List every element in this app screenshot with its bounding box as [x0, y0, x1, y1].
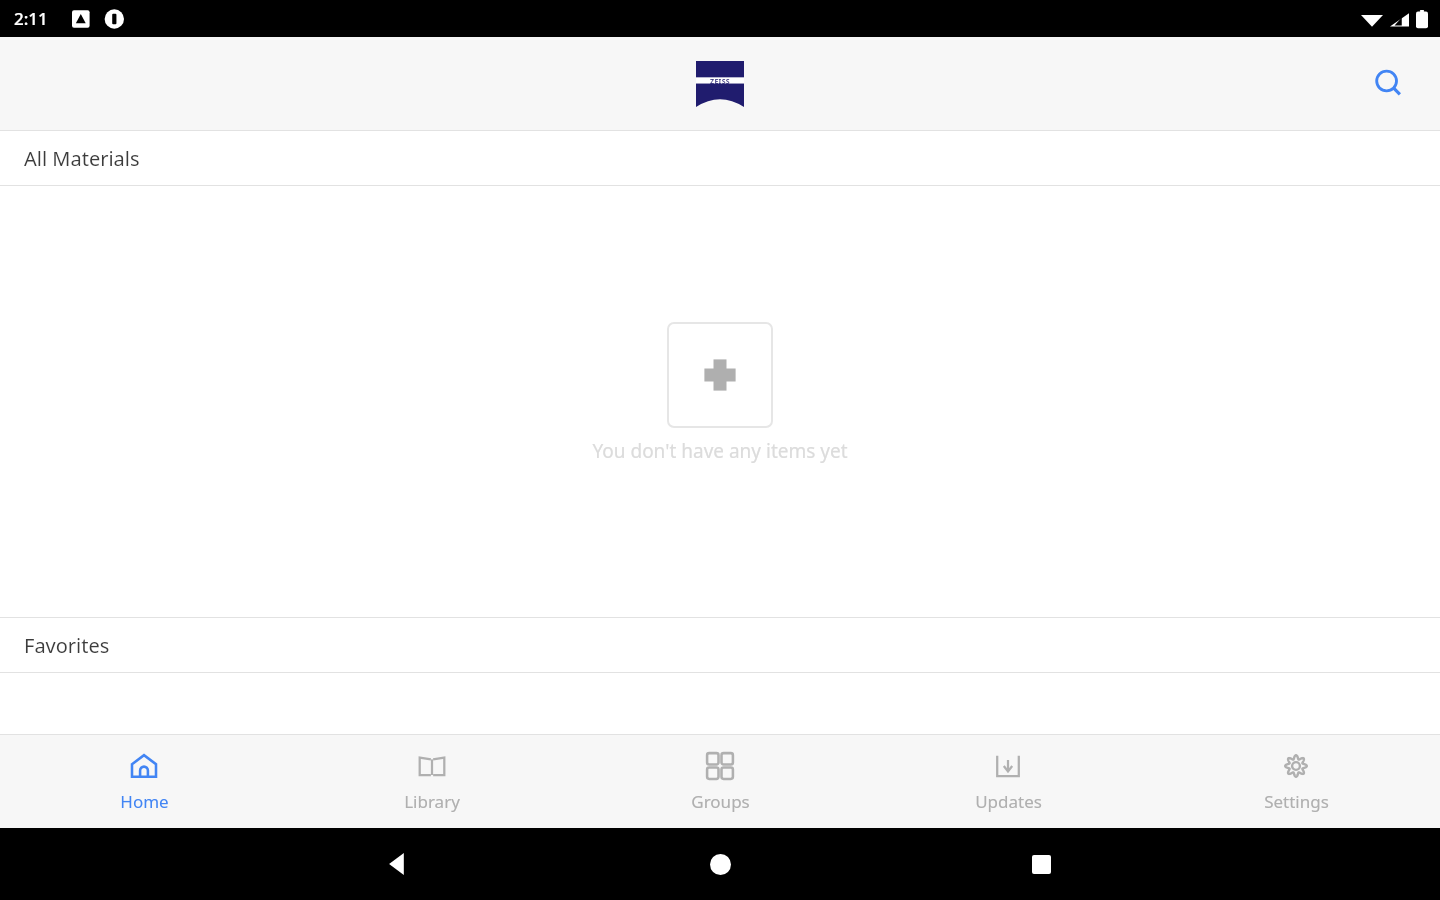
- staticText: Updates: [975, 790, 1042, 813]
- button[interactable]: Home: [696, 840, 744, 888]
- button[interactable]: Search: [1363, 58, 1415, 110]
- staticText: Favorites: [24, 632, 110, 659]
- button[interactable]: Updates: [864, 735, 1152, 828]
- button[interactable]: Settings: [1152, 735, 1440, 828]
- staticText: Home: [120, 790, 169, 813]
- button[interactable]: Recent apps: [1017, 840, 1065, 888]
- staticText: Settings: [1264, 790, 1329, 813]
- button[interactable]: Favorites: [0, 618, 1440, 672]
- staticText: Groups: [691, 790, 750, 813]
- button[interactable]: Back: [375, 840, 423, 888]
- staticText: You don't have any items yet: [592, 438, 848, 464]
- button[interactable]: Home: [0, 735, 288, 828]
- button[interactable]: Groups: [576, 735, 864, 828]
- staticText: Library: [404, 790, 460, 813]
- staticText: 2:11: [14, 7, 48, 30]
- staticText: ZEISS: [710, 77, 730, 87]
- button[interactable]: Add item: [668, 323, 772, 427]
- staticText: All Materials: [24, 145, 140, 172]
- button[interactable]: Library: [288, 735, 576, 828]
- button[interactable]: All Materials: [0, 131, 1440, 185]
